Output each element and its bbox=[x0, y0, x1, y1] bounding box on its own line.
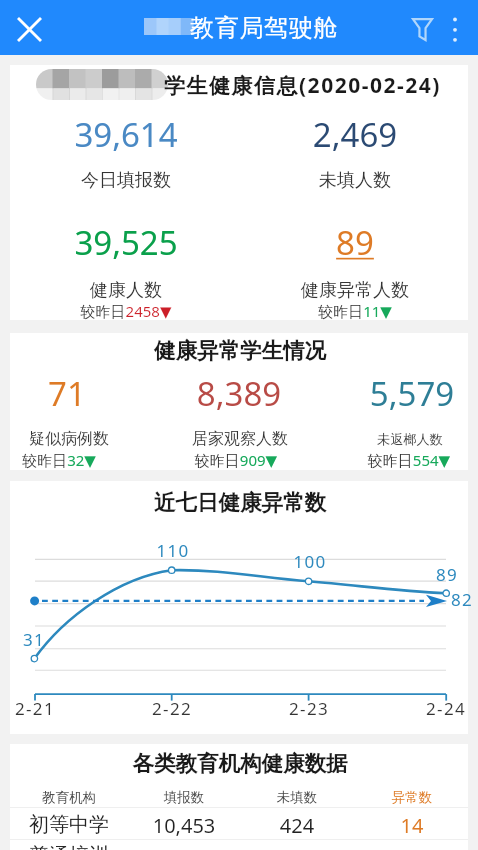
staticText: 学生健康信息(2020-02-24) bbox=[164, 71, 441, 100]
staticText: 较昨日554▼ bbox=[259, 450, 478, 470]
staticText: 教育局驾驶舱 bbox=[190, 13, 339, 43]
staticText: 2,469 bbox=[205, 112, 478, 157]
staticText: 未填人数 bbox=[205, 169, 478, 192]
button[interactable]: More options bbox=[438, 12, 472, 46]
staticText: 较昨日11▼ bbox=[205, 301, 478, 321]
staticText: 2-22 bbox=[22, 697, 322, 720]
staticText: 110 bbox=[23, 539, 323, 562]
staticText: 39,614 bbox=[0, 112, 276, 157]
staticText: 普通培训 bbox=[0, 843, 219, 850]
staticText: 71 bbox=[0, 371, 217, 416]
staticText: 教育机构 bbox=[0, 789, 219, 806]
staticText: 居家观察人数 bbox=[90, 429, 390, 449]
staticText: 异常数 bbox=[262, 789, 478, 806]
staticText: 39,525 bbox=[0, 220, 276, 265]
staticText: 2-24 bbox=[296, 697, 478, 720]
staticText: 较昨日909▼ bbox=[86, 450, 386, 470]
staticText: 2-23 bbox=[159, 697, 459, 720]
staticText: 未返榔人数 bbox=[260, 431, 478, 448]
staticText: 各类教育机构健康数据 bbox=[90, 750, 390, 777]
staticText: 89 bbox=[205, 220, 478, 265]
staticText: 10,453 bbox=[34, 812, 334, 839]
staticText: 8,389 bbox=[89, 371, 389, 416]
staticText: 未填数 bbox=[147, 789, 447, 806]
staticText: 填报数 bbox=[34, 789, 334, 806]
staticText: 近七日健康异常数 bbox=[90, 489, 390, 516]
staticText: 初等中学 bbox=[0, 812, 219, 837]
staticText: 健康人数 bbox=[0, 279, 276, 302]
staticText: 424 bbox=[147, 812, 447, 839]
staticText: 较昨日2458▼ bbox=[0, 301, 276, 321]
staticText: 89 bbox=[297, 563, 478, 586]
button[interactable]: Close bbox=[11, 11, 47, 47]
staticText: 健康异常人数 bbox=[205, 279, 478, 302]
staticText: 2-21 bbox=[0, 697, 185, 720]
staticText: 12 bbox=[34, 843, 334, 850]
staticText: 31 bbox=[0, 628, 184, 651]
staticText: 今日填报数 bbox=[0, 169, 276, 192]
staticText: 健康异常学生情况 bbox=[90, 337, 390, 364]
staticText: 疑似病例数 bbox=[0, 429, 219, 449]
staticText: 14 bbox=[262, 812, 478, 839]
staticText: 82 bbox=[312, 588, 478, 611]
staticText: 100 bbox=[160, 550, 460, 573]
button[interactable]: Filter bbox=[404, 11, 440, 47]
staticText: 5,579 bbox=[262, 371, 478, 416]
staticText: 较昨日32▼ bbox=[0, 450, 209, 470]
